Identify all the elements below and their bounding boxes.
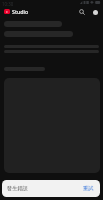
staticText: 重試 bbox=[83, 185, 94, 192]
staticText: 10:30 bbox=[2, 1, 14, 7]
button[interactable]: Studio bbox=[4, 8, 29, 15]
button[interactable]: 重試 bbox=[81, 183, 96, 194]
staticText: Studio bbox=[12, 8, 29, 15]
button[interactable]: Account bbox=[89, 6, 101, 18]
staticText: 發生錯誤 bbox=[7, 185, 28, 192]
button[interactable]: Search bbox=[76, 6, 88, 18]
